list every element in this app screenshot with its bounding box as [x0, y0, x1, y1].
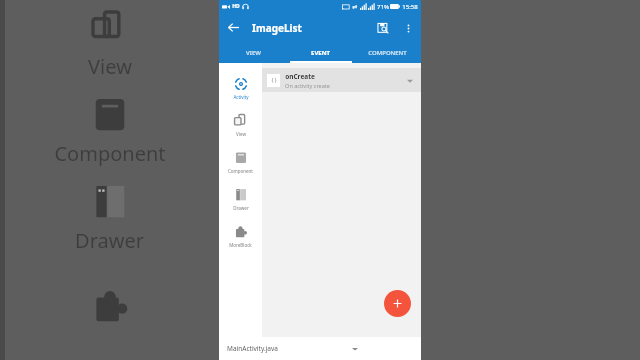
button[interactable]: More options [397, 17, 419, 39]
staticText: HD [232, 3, 240, 10]
button[interactable]: Component [219, 144, 262, 181]
staticText: MainActivity.java [227, 344, 278, 353]
staticText: View [88, 53, 132, 80]
button[interactable]: VIEW [219, 42, 287, 63]
button[interactable]: Activity [219, 70, 262, 107]
staticText: EVENT [311, 49, 330, 57]
staticText: On activity create [285, 82, 330, 89]
staticText: 15:58 [402, 3, 418, 11]
button[interactable]: Back [219, 13, 248, 42]
staticText: Drawer [233, 205, 249, 211]
staticText: { } [271, 77, 277, 84]
staticText: 71% [377, 3, 389, 11]
button[interactable]: { } [262, 68, 421, 92]
button[interactable]: MainActivity.java [219, 337, 364, 360]
staticText: ImageList [252, 21, 302, 35]
staticText: Component [228, 168, 253, 174]
staticText: onCreate [285, 72, 315, 81]
staticText: VIEW [246, 49, 261, 57]
staticText: Activity [233, 94, 249, 100]
staticText: Component [54, 140, 166, 167]
button[interactable]: Save [368, 13, 397, 42]
staticText: COMPONENT [368, 49, 407, 57]
staticText: MoreBlock [229, 242, 252, 248]
button[interactable]: View [219, 107, 262, 144]
staticText: View [236, 131, 246, 137]
button[interactable]: Expand [403, 74, 416, 87]
button[interactable]: Drawer [219, 181, 262, 218]
button[interactable]: EVENT [287, 42, 354, 63]
button[interactable]: COMPONENT [354, 42, 421, 63]
button[interactable]: Add event [384, 290, 411, 317]
button[interactable]: MoreBlock [219, 218, 262, 255]
staticText: ⇄ [352, 3, 358, 10]
staticText: Drawer [75, 227, 144, 254]
